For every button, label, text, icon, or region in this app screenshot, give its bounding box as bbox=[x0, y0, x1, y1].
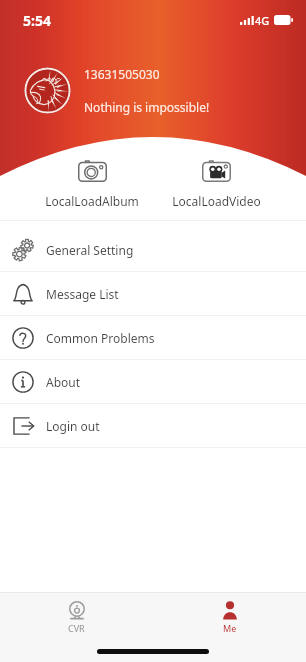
button[interactable]: LocalLoadVideo bbox=[156, 160, 276, 209]
button[interactable]: Message List bbox=[0, 272, 306, 315]
staticText: Nothing is impossible! bbox=[84, 99, 210, 115]
button[interactable]: Me bbox=[153, 601, 306, 634]
staticText: 5:54 bbox=[23, 11, 51, 30]
staticText: 13631505030 bbox=[84, 66, 160, 82]
button[interactable]: LocalLoadAlbum bbox=[32, 160, 152, 209]
button[interactable]: General Setting bbox=[0, 228, 306, 271]
staticText: Common Problems bbox=[46, 330, 155, 346]
button[interactable]: Login out bbox=[0, 404, 306, 447]
button[interactable]: About bbox=[0, 360, 306, 403]
staticText: General Setting bbox=[46, 242, 134, 258]
staticText: About bbox=[46, 374, 81, 390]
staticText: Me bbox=[223, 622, 237, 634]
staticText: 4G bbox=[255, 13, 270, 28]
button[interactable]: CVR bbox=[0, 601, 153, 634]
button[interactable]: Common Problems bbox=[0, 316, 306, 359]
staticText: LocalLoadAlbum bbox=[45, 193, 139, 209]
staticText: Message List bbox=[46, 286, 119, 302]
staticText: LocalLoadVideo bbox=[172, 193, 261, 209]
staticText: Login out bbox=[46, 418, 100, 434]
staticText: CVR bbox=[68, 622, 85, 634]
